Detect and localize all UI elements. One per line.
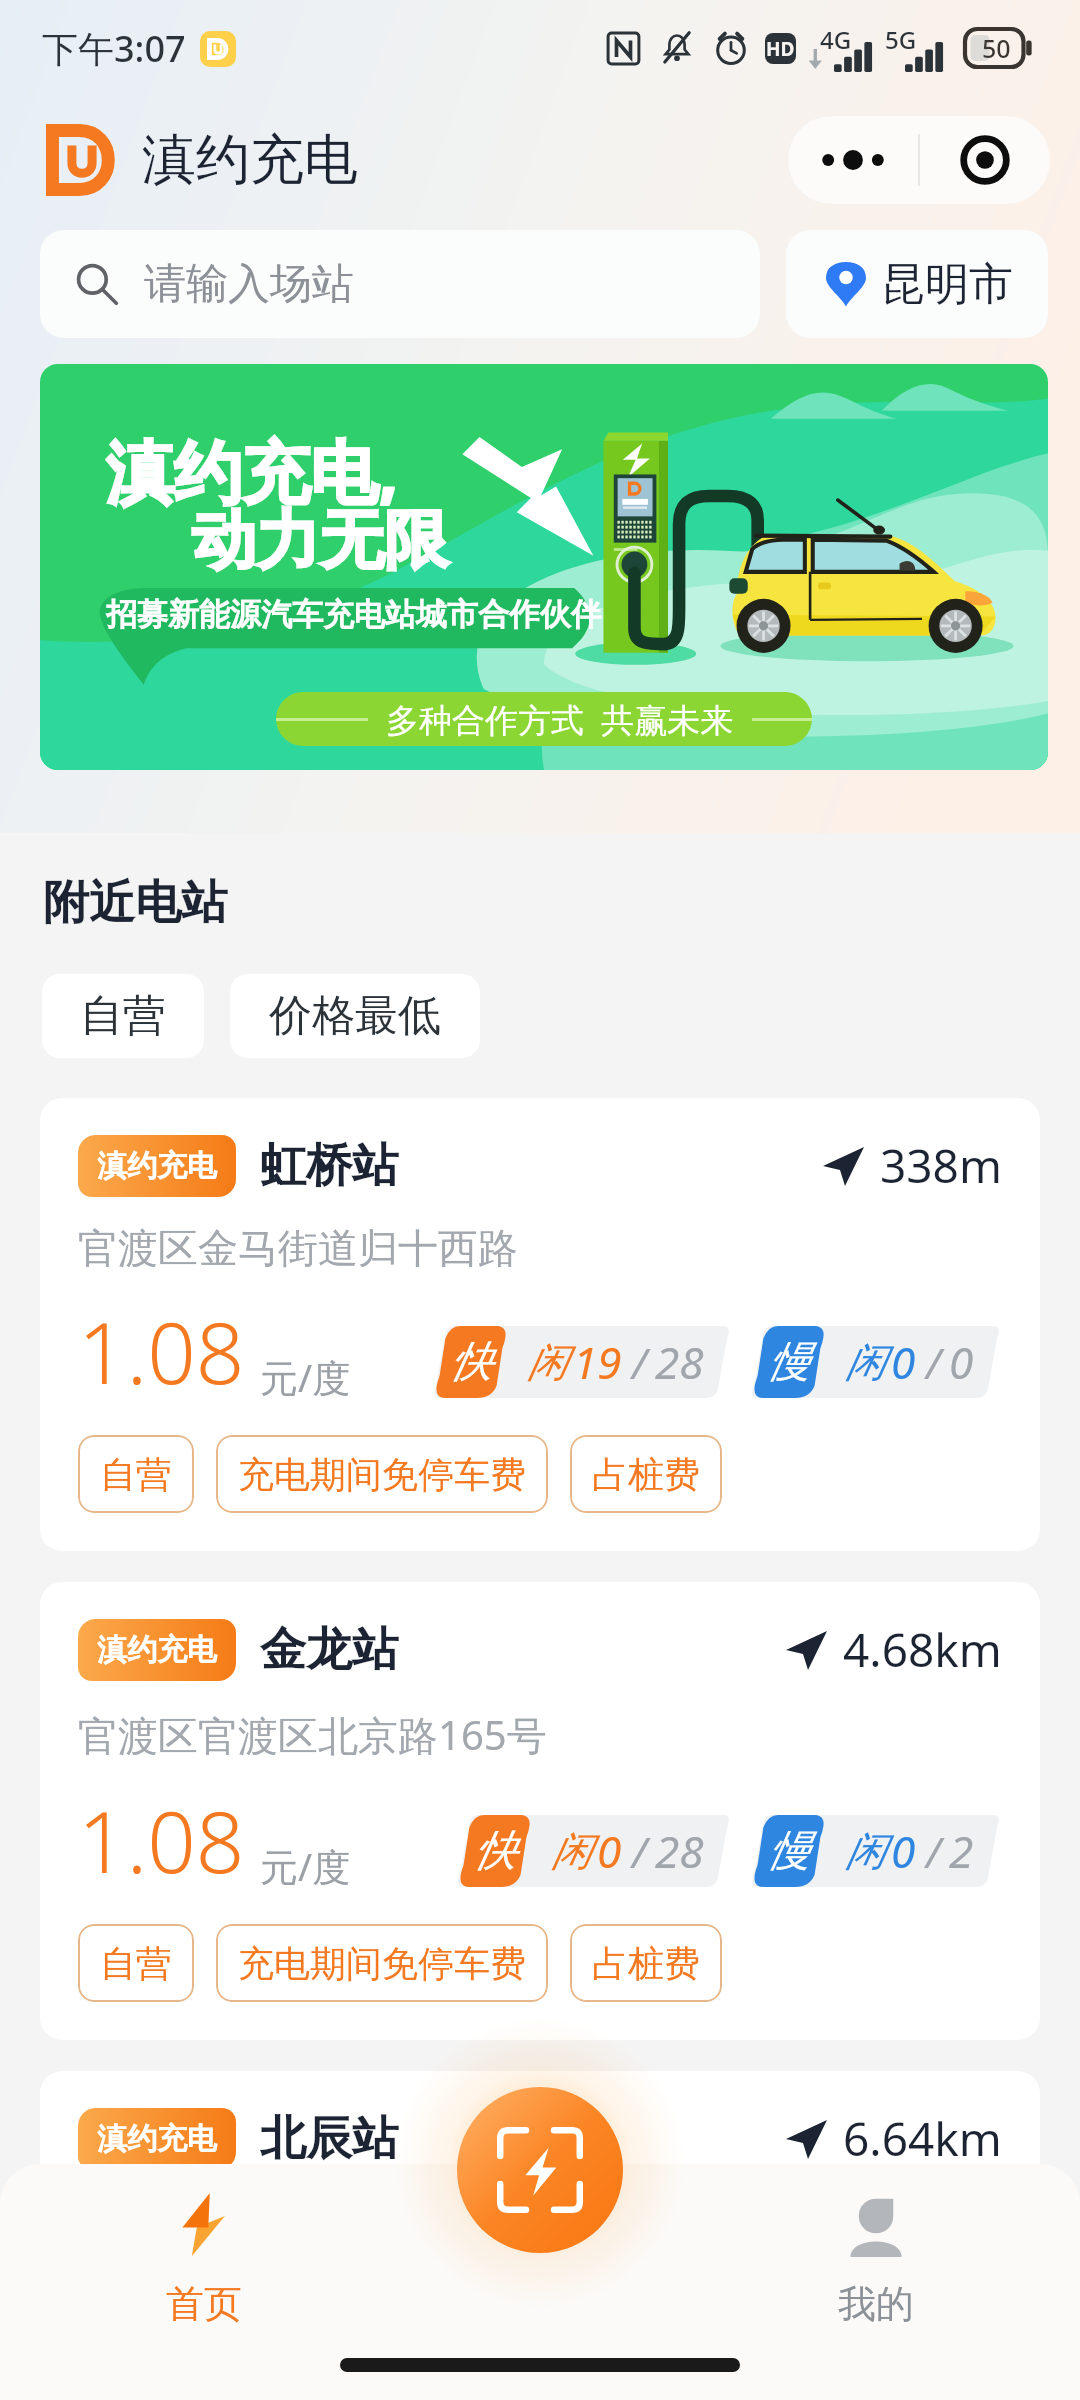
staticText: 金龙站	[260, 1621, 398, 1679]
staticText: 慢	[768, 1825, 810, 1878]
staticText: 充电期间免停车费	[238, 1452, 526, 1497]
staticText: 0	[891, 1821, 916, 1881]
staticText: 下午3:07	[42, 24, 186, 73]
staticText: 闲	[845, 1337, 885, 1387]
staticText: 50	[982, 31, 1011, 65]
button[interactable]: 滇约充电	[40, 1098, 1040, 1551]
button[interactable]: 价格最低	[230, 974, 480, 1058]
staticText: 338m	[880, 1134, 1002, 1197]
staticText: 动力无限	[192, 500, 448, 581]
staticText: 4.68km	[843, 1618, 1002, 1681]
staticText: 附近电站	[43, 874, 227, 932]
staticText: 官渡区金马街道归十西路	[78, 1223, 518, 1273]
staticText: /	[632, 1823, 647, 1880]
staticText: 0	[891, 2285, 916, 2345]
staticText: HD	[766, 36, 795, 62]
staticText: 充电期间免停车费	[238, 1941, 526, 1986]
staticText: 6.64km	[843, 2107, 1002, 2170]
button[interactable]: Scan to charge	[457, 2087, 623, 2253]
staticText: 1.08	[78, 2266, 245, 2362]
staticText: 2	[949, 1821, 974, 1881]
staticText: 1.08	[78, 1293, 245, 1409]
staticText: 滇约充电	[97, 1147, 217, 1185]
staticText: 滇约充电	[97, 1631, 217, 1669]
staticText: 28	[655, 1821, 704, 1881]
staticText: 官渡区北京路	[78, 2196, 318, 2246]
staticText: 闲	[845, 2290, 885, 2340]
staticText: 快	[474, 1825, 516, 1878]
staticText: 价格最低	[269, 989, 441, 1043]
staticText: 请输入场站	[144, 258, 354, 311]
staticText: 闲	[845, 1826, 885, 1876]
staticText: 占桩费	[592, 1452, 700, 1497]
button[interactable]: 请输入场站	[40, 230, 760, 338]
staticText: 元/度	[260, 1351, 351, 1403]
staticText: 我的	[838, 2280, 914, 2328]
staticText: /	[926, 1823, 941, 1880]
staticText: 多种合作方式 共赢未来	[386, 697, 734, 742]
staticText: 北辰站	[260, 2110, 398, 2168]
staticText: 0	[891, 1332, 916, 1392]
staticText: 自营	[100, 1452, 172, 1497]
button[interactable]: Close mini program	[920, 116, 1050, 204]
button[interactable]: 首页	[36, 2164, 372, 2342]
staticText: 自营	[80, 989, 166, 1043]
button[interactable]: 昆明市	[786, 230, 1048, 338]
button[interactable]: 滇约充电,动力无限 banner	[40, 364, 1048, 770]
staticText: 1.08	[78, 1782, 245, 1898]
staticText: 0	[597, 1821, 622, 1881]
staticText: 昆明市	[881, 257, 1013, 312]
button[interactable]: 滇约充电	[40, 2071, 1040, 2400]
staticText: 首页	[166, 2280, 242, 2328]
button[interactable]: 自营	[42, 974, 204, 1058]
staticText: 占桩费	[592, 1941, 700, 1986]
staticText: /	[632, 1334, 647, 1391]
staticText: 滇约充电,	[106, 424, 400, 517]
staticText: 5G	[885, 23, 917, 56]
button[interactable]: 我的	[708, 2164, 1044, 2342]
staticText: 4G	[820, 23, 852, 56]
staticText: 闲	[551, 1826, 591, 1876]
staticText: 滇约充电	[97, 2120, 217, 2158]
staticText: 滇约充电	[142, 126, 358, 194]
staticText: 自营	[100, 1941, 172, 1986]
staticText: /	[926, 1334, 941, 1391]
staticText: 招募新能源汽车充电站城市合作伙伴	[106, 595, 602, 634]
staticText: 官渡区官渡区北京路165号	[78, 1707, 547, 1762]
staticText: 慢	[768, 1336, 810, 1389]
button[interactable]: More	[788, 116, 918, 204]
staticText: 28	[655, 1332, 704, 1392]
button[interactable]: 滇约充电	[40, 1582, 1040, 2040]
staticText: 闲	[527, 1337, 567, 1387]
staticText: 快	[450, 1336, 492, 1389]
staticText: 0	[949, 1332, 974, 1392]
staticText: 元/度	[260, 1840, 351, 1892]
staticText: 19	[573, 1332, 622, 1392]
staticText: 虹桥站	[260, 1137, 398, 1195]
